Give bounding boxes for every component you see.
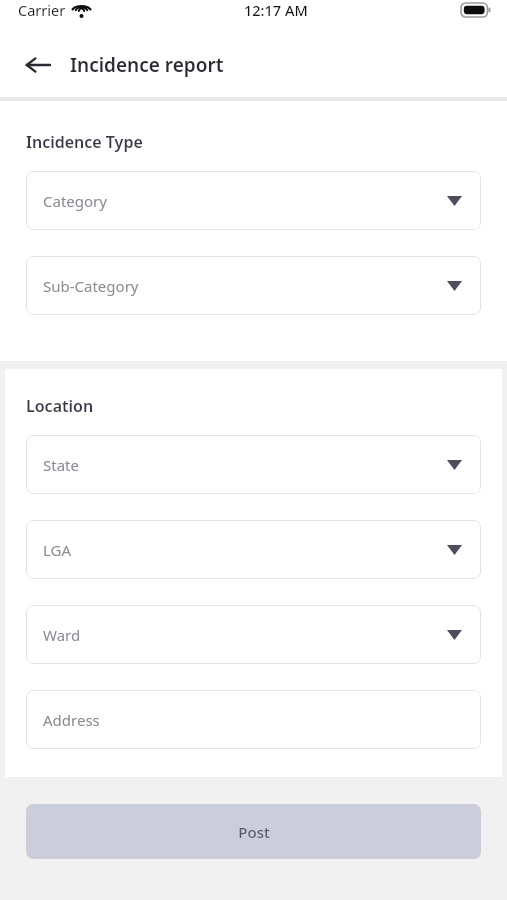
staticText: Incidence report bbox=[70, 52, 224, 78]
staticText: LGA bbox=[43, 540, 72, 560]
button[interactable]: LGA bbox=[26, 520, 481, 579]
button[interactable]: Back bbox=[14, 41, 62, 89]
button[interactable]: Category bbox=[26, 171, 481, 230]
button[interactable]: State bbox=[26, 435, 481, 494]
staticText: Category bbox=[43, 191, 107, 211]
staticText: Incidence Type bbox=[26, 131, 143, 153]
staticText: Sub-Category bbox=[43, 276, 139, 296]
staticText: Carrier bbox=[18, 0, 66, 20]
button[interactable]: Post bbox=[26, 804, 481, 859]
staticText: State bbox=[43, 455, 79, 475]
staticText: 12:17 AM bbox=[244, 0, 308, 20]
staticText: Post bbox=[238, 822, 270, 842]
button[interactable]: Ward bbox=[26, 605, 481, 664]
staticText: Ward bbox=[43, 625, 81, 645]
button[interactable]: Sub-Category bbox=[26, 256, 481, 315]
staticText: Location bbox=[26, 395, 94, 417]
staticText: Address bbox=[43, 710, 100, 730]
button[interactable]: Address bbox=[26, 690, 481, 749]
